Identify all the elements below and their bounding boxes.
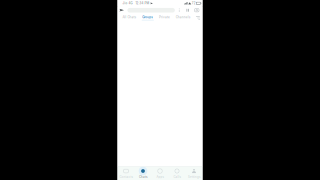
staticText: Settings	[188, 175, 200, 179]
staticText: Contacts	[119, 175, 132, 179]
button[interactable]: Calls	[168, 167, 185, 180]
staticText: Jio 4G 12:34 PM	[122, 1, 149, 5]
button[interactable]: Private	[158, 15, 171, 21]
button[interactable]: Camera	[189, 8, 199, 13]
staticText: Apps	[156, 175, 163, 179]
button[interactable]: Compose	[175, 8, 180, 12]
button[interactable]	[127, 8, 175, 13]
staticText: Chats	[139, 175, 147, 179]
staticText: Channels	[176, 15, 191, 19]
button[interactable]: Chats	[134, 167, 151, 180]
staticText: 72	[192, 1, 196, 5]
button[interactable]: Apps	[151, 167, 168, 180]
button[interactable]: Channels	[175, 15, 191, 21]
button[interactable]: All Chats	[122, 15, 137, 21]
button[interactable]: Settings	[185, 167, 202, 180]
staticText: Private	[159, 15, 170, 19]
staticText: All Chats	[123, 15, 137, 19]
button[interactable]: Groups	[142, 15, 154, 21]
button[interactable]: Sort	[196, 16, 200, 20]
button[interactable]: Contacts	[117, 167, 134, 180]
button[interactable]: Menu	[119, 7, 124, 14]
staticText: Calls	[173, 175, 180, 179]
staticText: Groups	[142, 15, 153, 19]
button[interactable]: Filter	[180, 8, 189, 12]
